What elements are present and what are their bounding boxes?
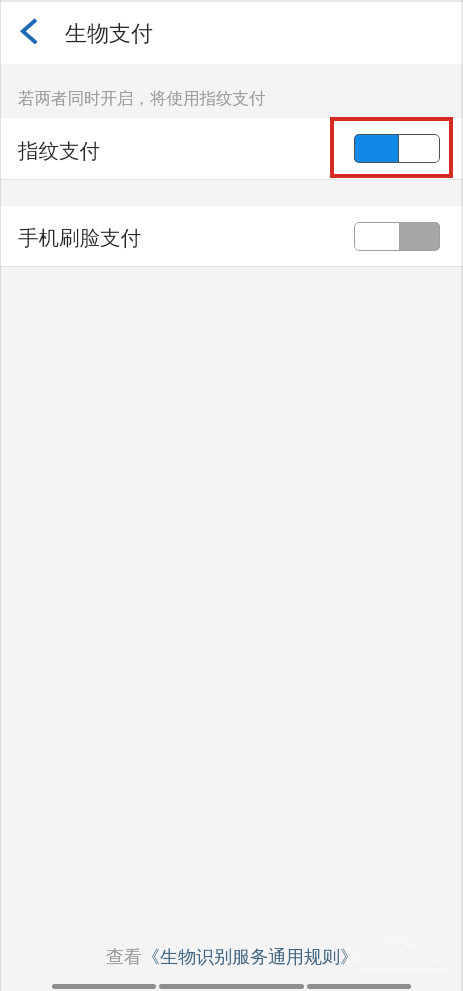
button[interactable]: Back xyxy=(0,0,56,64)
button[interactable]: Back xyxy=(52,984,156,989)
button[interactable]: Home xyxy=(159,984,304,989)
button[interactable]: 查看《生物识别服务通用规则》 xyxy=(106,946,358,969)
staticText: 生物支付 xyxy=(65,20,153,48)
staticText: 指纹支付 xyxy=(18,138,100,164)
button[interactable]: On xyxy=(354,134,440,163)
staticText: 若两者同时开启，将使用指纹支付 xyxy=(18,88,266,109)
staticText: 查看《生物识别服务通用规则》 xyxy=(106,946,358,969)
button[interactable]: 指纹支付 xyxy=(0,118,463,179)
button[interactable]: Off xyxy=(354,222,440,251)
button[interactable]: 手机刷脸支付 xyxy=(0,206,463,266)
button[interactable]: Recent apps xyxy=(307,984,411,989)
staticText: 手机刷脸支付 xyxy=(18,225,141,251)
